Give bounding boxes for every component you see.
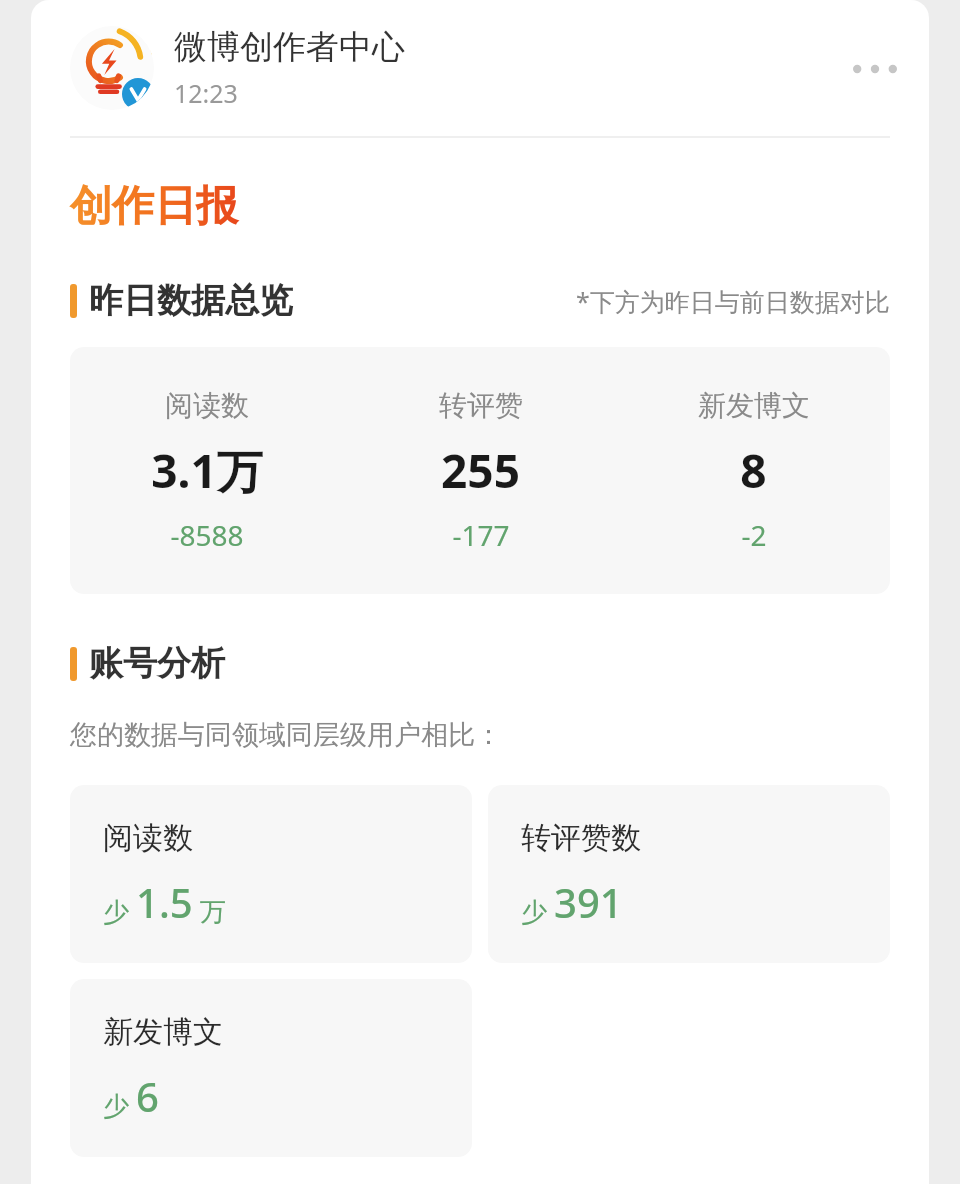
staticText: 391 [554,875,623,929]
staticText: 万 [200,896,226,929]
button[interactable]: 新发博文 [70,979,472,1157]
button[interactable]: Weibo Creator Center avatar [70,26,154,110]
staticText: 转评赞数 [521,819,641,857]
staticText: -8588 [170,516,244,554]
staticText: 新发博文 [698,388,810,423]
staticText: -2 [741,516,767,554]
staticText: 8 [740,439,767,502]
staticText: 255 [441,439,520,502]
staticText: -177 [452,516,510,554]
staticText: 6 [136,1069,159,1123]
button[interactable]: 转评赞 [344,388,617,554]
staticText: 阅读数 [165,388,249,423]
staticText: 账号分析 [89,642,225,685]
button[interactable]: Weibo Creator Center avatar [70,26,890,110]
staticText: 3.1万 [151,439,263,502]
staticText: 新发博文 [103,1013,223,1051]
staticText: 阅读数 [103,819,193,857]
staticText: 12:23 [174,76,238,110]
staticText: 昨日数据总览 [89,279,293,322]
button[interactable]: 阅读数 [70,347,890,594]
staticText: 少 [521,896,547,929]
button[interactable]: 新发博文 [617,388,890,554]
button[interactable]: 阅读数 [70,785,472,963]
staticText: 微博创作者中心 [174,26,405,68]
button[interactable]: 阅读数 [70,388,344,554]
staticText: 创作日报 [70,180,238,233]
staticText: 少 [103,1090,129,1123]
button[interactable]: 转评赞数 [488,785,890,963]
staticText: *下方为昨日与前日数据对比 [576,284,890,318]
staticText: 您的数据与同领域同层级用户相比： [70,718,502,752]
staticText: 1.5 [136,875,193,929]
staticText: 转评赞 [439,388,523,423]
staticText: 少 [103,896,129,929]
button[interactable]: More options [848,44,902,94]
